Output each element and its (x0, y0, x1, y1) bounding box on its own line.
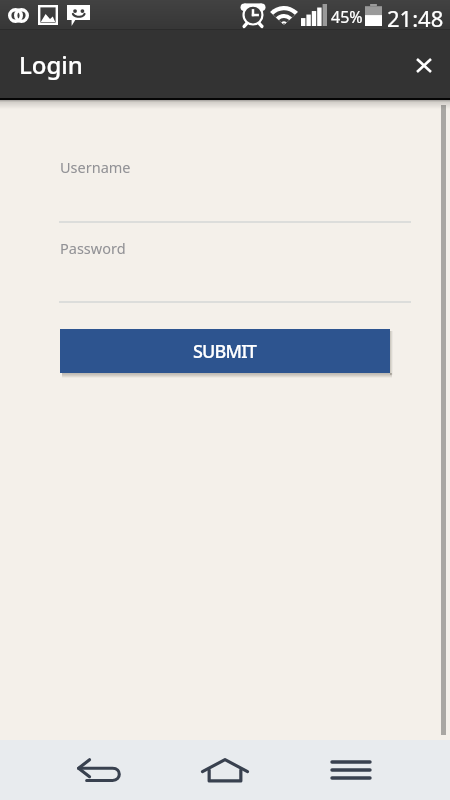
staticText: Username (60, 157, 131, 177)
button[interactable]: Close (400, 41, 448, 89)
staticText: Password (60, 238, 126, 258)
staticText: 45% (331, 6, 363, 28)
button[interactable]: Recent apps (288, 740, 414, 800)
button[interactable]: Password (59, 224, 411, 303)
button[interactable]: Username (59, 143, 411, 223)
button[interactable]: Back (36, 740, 162, 800)
button[interactable]: Home (162, 740, 288, 800)
staticText: 21:48 (387, 3, 444, 33)
staticText: SUBMIT (193, 339, 257, 364)
button[interactable]: SUBMIT (60, 329, 390, 373)
staticText: Login (19, 48, 83, 81)
